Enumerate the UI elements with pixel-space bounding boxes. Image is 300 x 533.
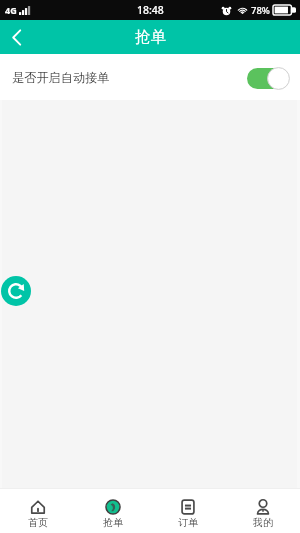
button[interactable]: Refresh bbox=[1, 276, 31, 306]
staticText: 我的 bbox=[253, 516, 273, 529]
button[interactable]: 首页 bbox=[0, 493, 75, 529]
staticText: 18:48 bbox=[137, 3, 164, 17]
button[interactable]: 抢单 bbox=[75, 493, 150, 529]
staticText: 抢单 bbox=[135, 27, 166, 47]
button[interactable]: 我的 bbox=[225, 493, 300, 529]
button[interactable]: 订单 bbox=[150, 493, 225, 529]
staticText: 订单 bbox=[178, 516, 198, 529]
staticText: 是否开启自动接单 bbox=[12, 70, 110, 85]
staticText: 首页 bbox=[28, 516, 48, 529]
button[interactable]: Back bbox=[0, 21, 33, 54]
button[interactable]: 是否开启自动接单 bbox=[0, 54, 300, 100]
staticText: 抢单 bbox=[103, 516, 123, 529]
staticText: 4G bbox=[5, 4, 17, 16]
staticText: 78% bbox=[251, 4, 270, 17]
